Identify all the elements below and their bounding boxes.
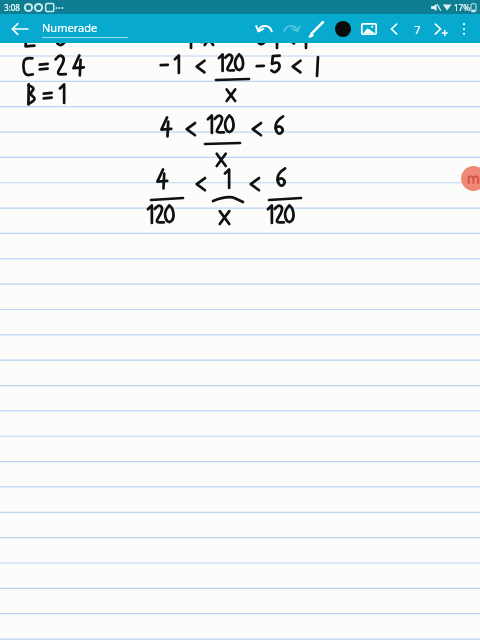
button[interactable]: Insert image <box>356 16 382 42</box>
button[interactable]: Back <box>6 15 34 43</box>
button[interactable]: Numerade <box>42 20 128 38</box>
button[interactable]: Ink colour <box>330 16 356 42</box>
staticText: 7 <box>414 22 421 37</box>
button[interactable]: Add page <box>428 17 452 41</box>
button[interactable]: More options <box>452 17 476 41</box>
button[interactable]: Previous page <box>382 17 406 41</box>
staticText: 3:08 <box>4 2 20 13</box>
button[interactable]: Pen <box>304 16 330 42</box>
button[interactable]: Numerade help <box>461 166 480 191</box>
button[interactable]: Undo <box>252 16 278 42</box>
staticText: Numerade <box>42 20 98 35</box>
button[interactable]: Redo <box>278 16 304 42</box>
staticText: 17% <box>454 2 470 13</box>
button[interactable]: 7 <box>406 17 428 41</box>
